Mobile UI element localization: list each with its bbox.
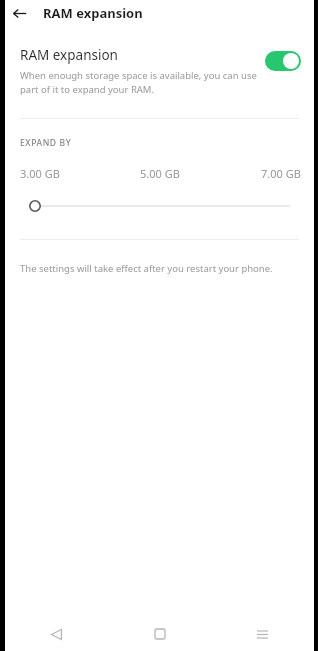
staticText: 7.00 GB [261,166,301,181]
staticText: EXPAND BY [20,137,72,149]
staticText: 5.00 GB [140,166,180,181]
staticText: RAM expansion [20,46,118,64]
button[interactable]: RAM expansion [5,46,314,96]
button[interactable]: Home [108,617,211,651]
staticText: The settings will take effect after you … [20,262,273,275]
button[interactable]: Recent apps [211,617,314,651]
button[interactable]: RAM expansion toggle [265,51,301,71]
staticText: When enough storage space is available, … [20,69,257,96]
button[interactable]: Back [5,617,108,651]
staticText: 3.00 GB [20,166,60,181]
staticText: RAM expansion [43,4,143,22]
button[interactable]: Expand by amount slider [5,195,314,217]
button[interactable]: Back [5,0,33,26]
